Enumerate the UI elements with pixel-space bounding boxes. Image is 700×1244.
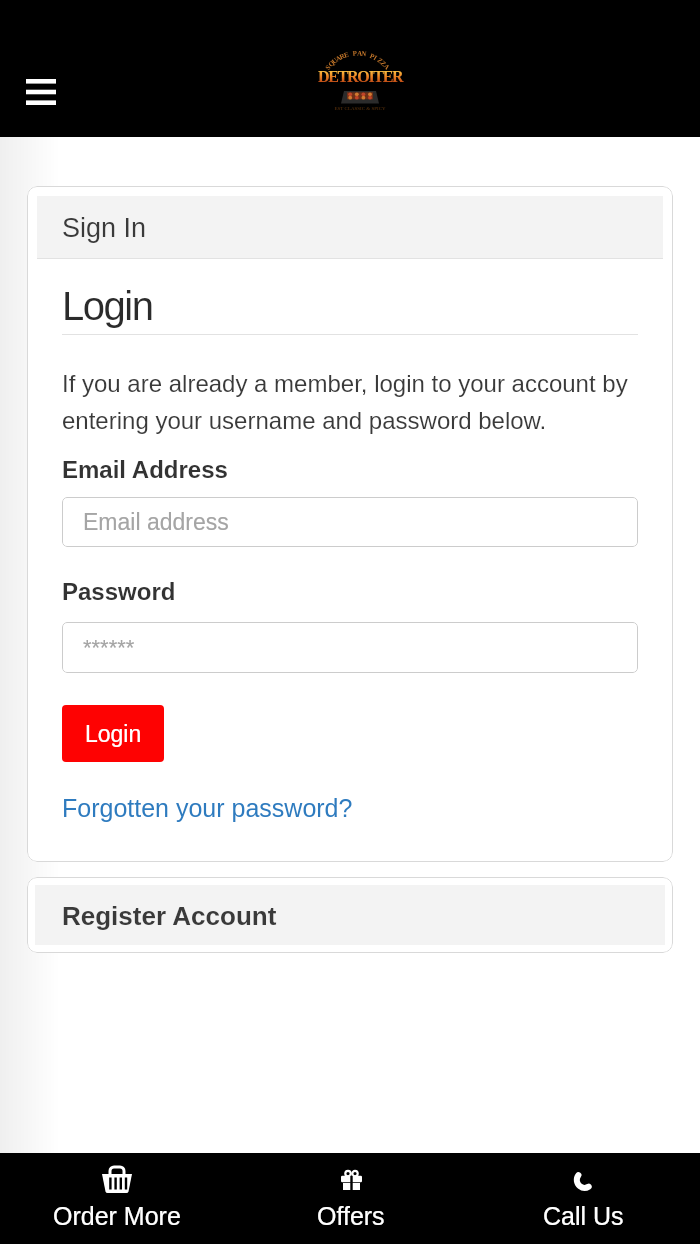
button[interactable]: Email address [62,497,638,547]
staticText: ****** [83,635,135,660]
button[interactable]: Login [62,705,164,762]
staticText: Call Us [543,1202,624,1230]
button[interactable]: Offers [234,1153,467,1244]
button[interactable]: Register Account [35,885,665,945]
button[interactable]: Order More [0,1153,234,1244]
staticText: Email Address [62,456,228,483]
staticText: Register Account [62,901,277,930]
button[interactable]: Forgotten your password? [62,794,353,822]
button[interactable]: ****** [62,622,638,673]
button[interactable]: Call Us [467,1153,700,1244]
staticText: Order More [53,1202,181,1230]
staticText: Email address [83,509,229,535]
staticText: Offers [317,1202,385,1230]
staticText: Login [62,284,153,329]
button[interactable] [26,79,56,105]
staticText: Password [62,578,176,605]
staticText: Login [85,721,142,747]
staticText: Sign In [62,213,147,243]
staticText: If you are already a member, login to yo… [62,370,638,435]
